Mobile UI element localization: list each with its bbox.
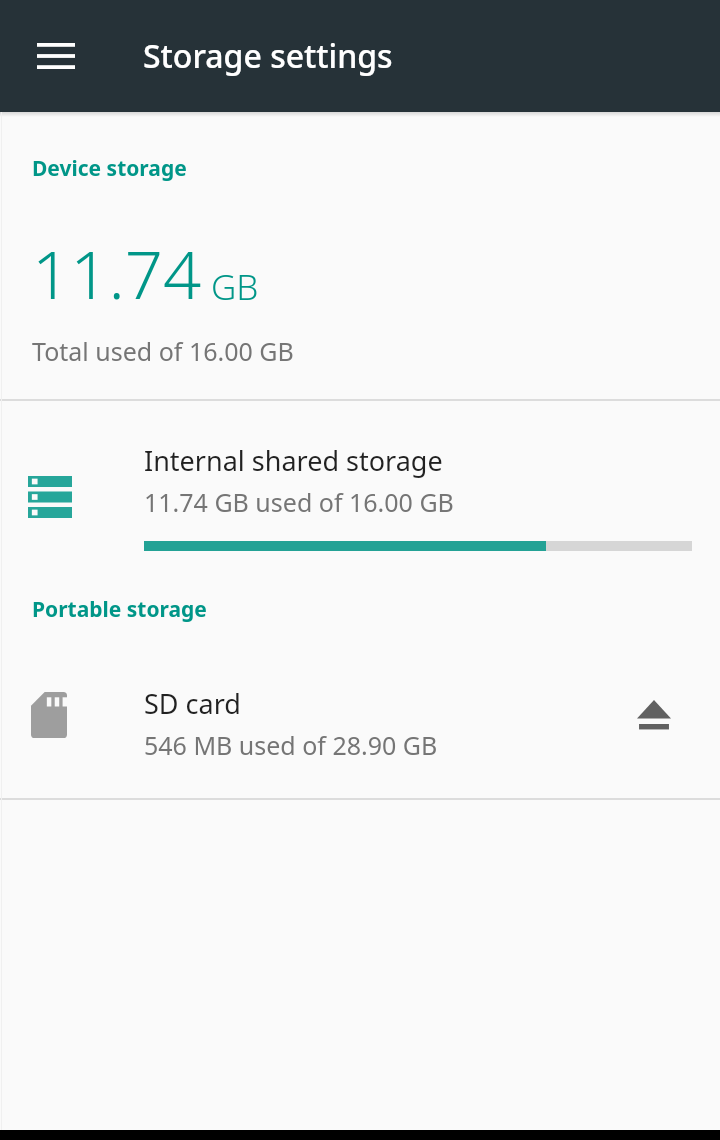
staticText: Storage settings [143,34,393,78]
button[interactable]: SD card [0,670,720,798]
staticText: 11.74 [32,227,202,318]
staticText: Total used of 16.00 GB [32,334,294,368]
button[interactable]: Open navigation menu [19,19,93,93]
staticText: Device storage [32,154,187,183]
button[interactable]: Internal shared storage [0,401,720,581]
button[interactable]: Eject SD card [618,680,690,752]
staticText: SD card [144,685,241,722]
staticText: Internal shared storage [144,442,443,479]
staticText: GB [211,263,259,311]
staticText: 546 MB used of 28.90 GB [144,728,438,762]
staticText: 11.74 GB used of 16.00 GB [144,485,454,519]
staticText: Portable storage [32,595,207,624]
